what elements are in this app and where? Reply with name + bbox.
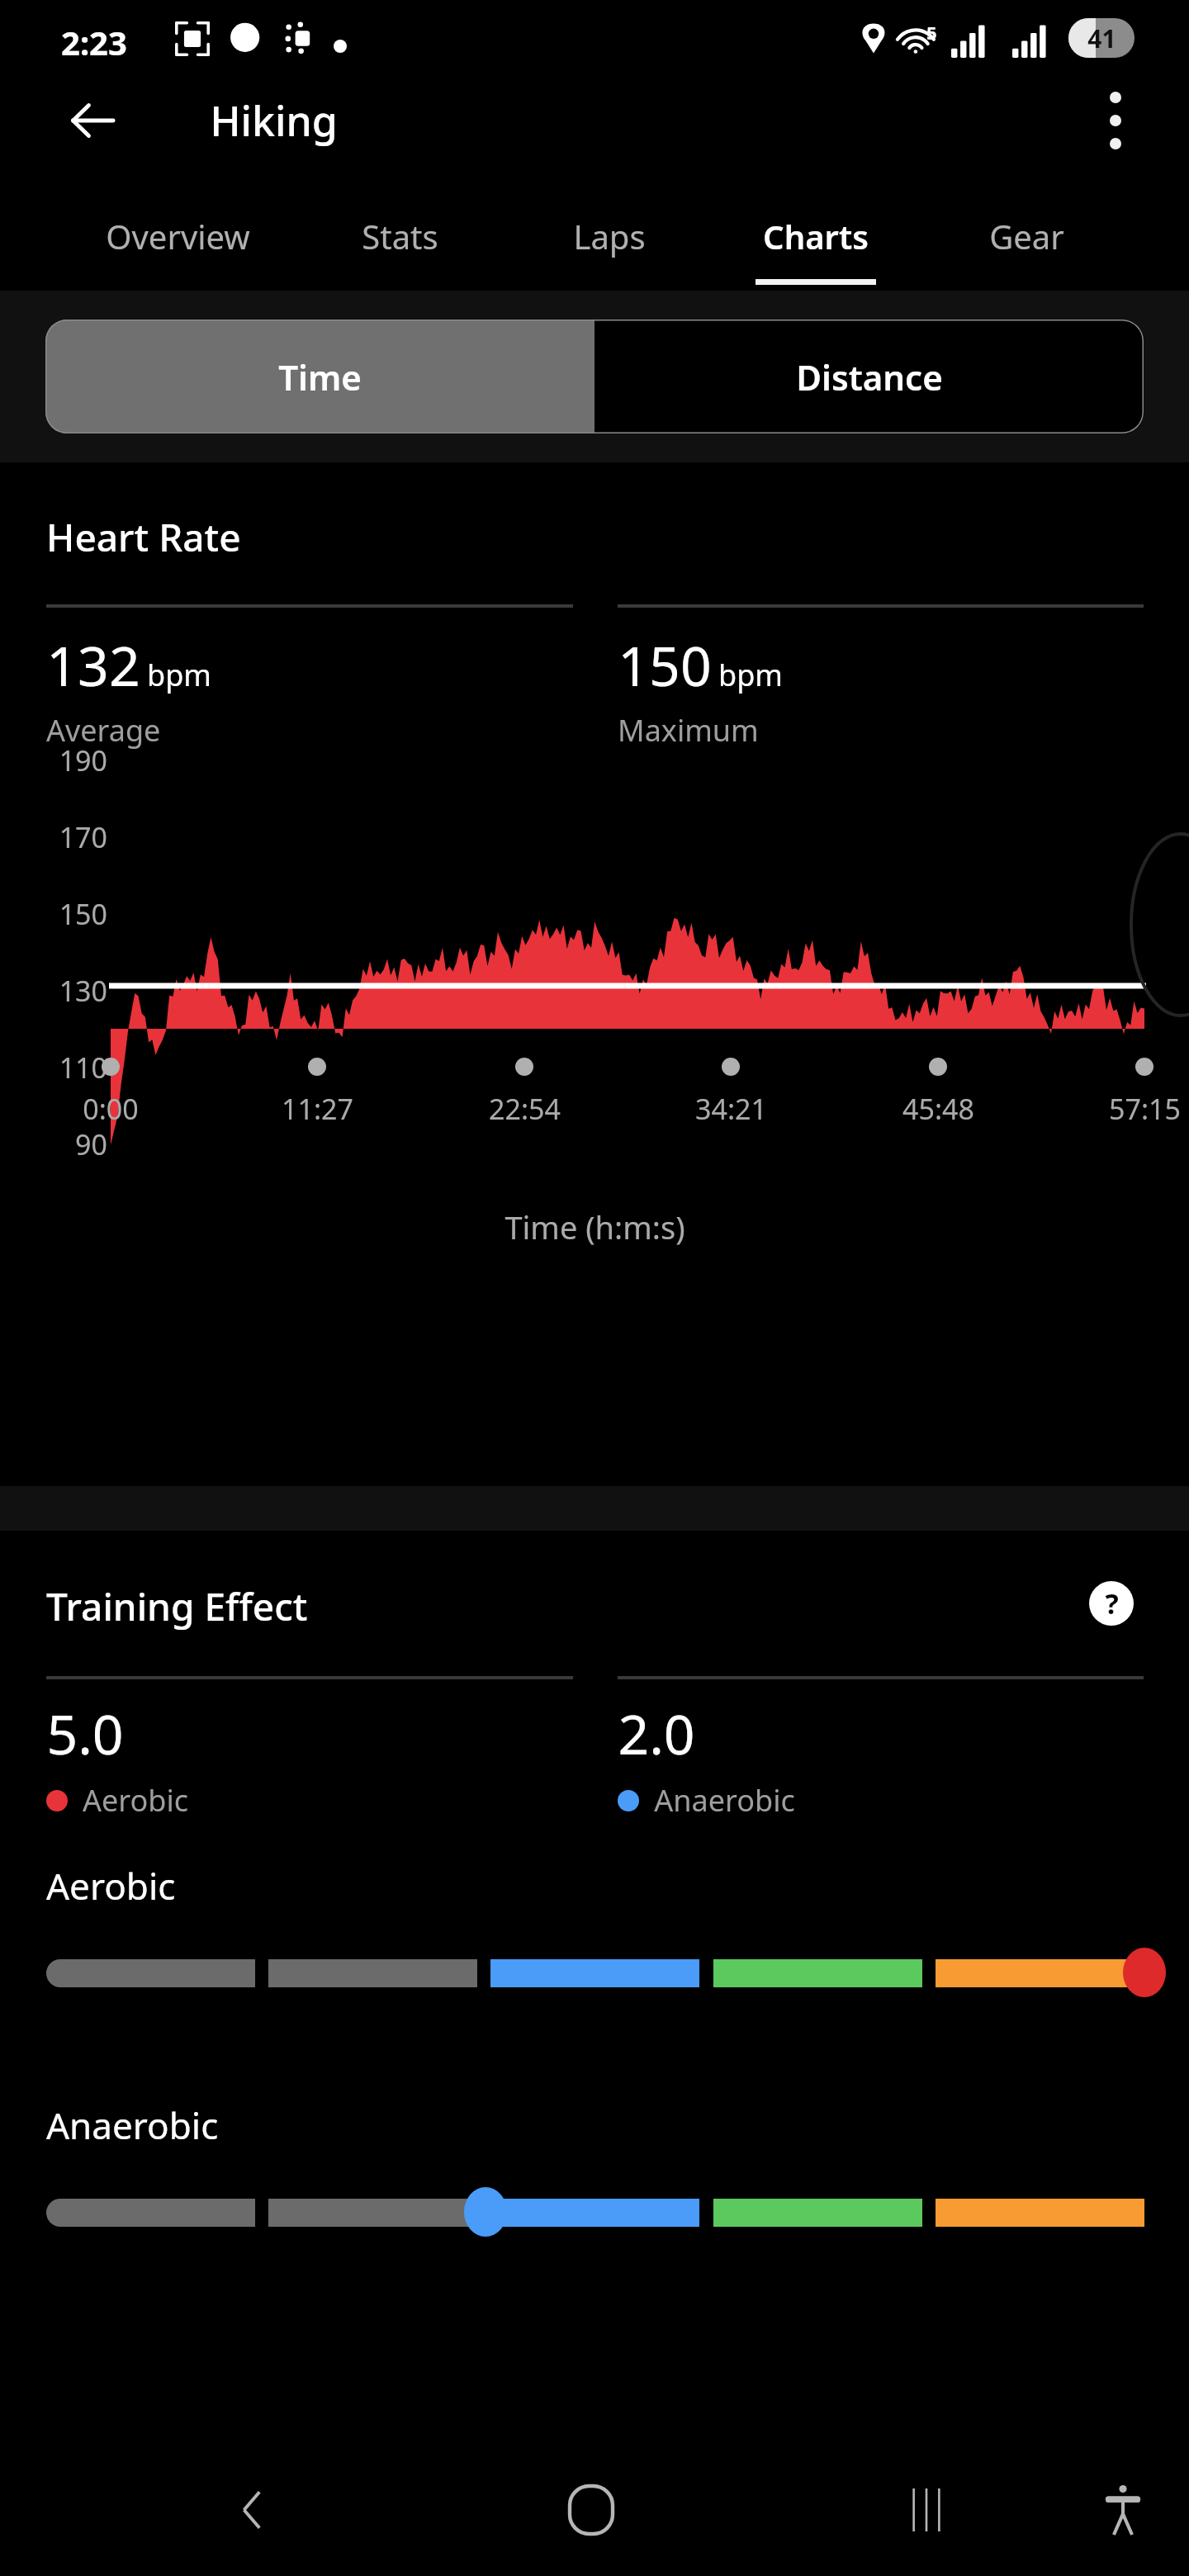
staticText: 22:54 xyxy=(489,1090,561,1128)
staticText: Hiking xyxy=(210,92,338,149)
button[interactable]: Stats xyxy=(301,175,499,291)
staticText: 90 xyxy=(25,1125,107,1163)
button[interactable] xyxy=(46,1948,1144,1997)
button[interactable]: Help xyxy=(1087,1579,1136,1628)
staticText: Maximum xyxy=(618,710,759,751)
staticText: Stats xyxy=(362,214,438,258)
staticText: 170 xyxy=(25,818,107,856)
button[interactable]: Charts xyxy=(717,175,915,291)
staticText: 57:15 xyxy=(1109,1090,1181,1128)
staticText: 0:00 xyxy=(83,1090,139,1128)
staticText: 110 xyxy=(25,1049,107,1087)
button[interactable]: Overview xyxy=(78,175,277,291)
staticText: 5 xyxy=(926,20,937,45)
button[interactable]: Back xyxy=(46,74,139,167)
staticText: Anaerobic xyxy=(654,1780,795,1821)
button[interactable] xyxy=(46,2187,1144,2237)
staticText: Average xyxy=(46,710,161,751)
staticText: Distance xyxy=(796,353,943,400)
staticText: Heart Rate xyxy=(46,511,241,563)
staticText: 11:27 xyxy=(282,1090,353,1128)
staticText: Aerobic xyxy=(83,1780,188,1821)
staticText: Charts xyxy=(763,214,869,258)
button[interactable]: Time xyxy=(45,320,594,433)
staticText: 132 xyxy=(46,627,140,702)
staticText: Gear xyxy=(989,214,1064,258)
staticText: Time (h:m:s) xyxy=(504,1205,685,1248)
staticText: Overview xyxy=(106,214,250,258)
staticText: 45:48 xyxy=(902,1090,974,1128)
staticText: 34:21 xyxy=(695,1090,767,1128)
staticText: Time xyxy=(278,353,362,400)
button[interactable]: Accessibility xyxy=(1082,2469,1164,2551)
staticText: bpm xyxy=(718,655,783,695)
staticText: Anaerobic xyxy=(46,2100,219,2150)
staticText: 130 xyxy=(25,972,107,1010)
button[interactable]: Back xyxy=(213,2469,296,2551)
staticText: bpm xyxy=(147,655,211,695)
staticText: 2.0 xyxy=(618,1696,695,1770)
staticText: Training Effect xyxy=(46,1580,308,1632)
staticText: 190 xyxy=(25,741,107,779)
staticText: 150 xyxy=(25,895,107,933)
staticText: 150 xyxy=(618,627,712,702)
staticText: ? xyxy=(1105,1584,1119,1622)
staticText: 5.0 xyxy=(46,1696,124,1770)
staticText: 2:23 xyxy=(61,20,127,64)
staticText: Laps xyxy=(573,214,646,258)
button[interactable]: Laps xyxy=(510,175,708,291)
button[interactable]: Gear xyxy=(927,175,1125,291)
staticText: 41 xyxy=(1087,21,1116,55)
button[interactable]: Distance xyxy=(594,320,1144,433)
button[interactable]: Recent apps xyxy=(885,2469,968,2551)
staticText: Aerobic xyxy=(46,1861,176,1911)
button[interactable]: Home xyxy=(550,2469,632,2551)
button[interactable]: More options xyxy=(1070,75,1161,166)
